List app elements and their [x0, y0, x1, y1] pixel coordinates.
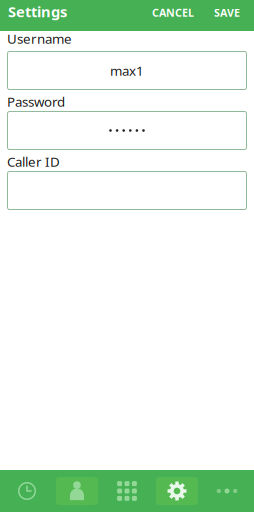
button[interactable]: More: [202, 470, 252, 512]
button[interactable]: Contacts: [52, 470, 102, 512]
staticText: SAVE: [214, 5, 240, 20]
staticText: Settings: [8, 2, 67, 21]
button[interactable]: Settings: [152, 470, 202, 512]
staticText: CANCEL: [152, 5, 194, 20]
staticText: Caller ID: [7, 153, 60, 170]
staticText: max1: [110, 62, 144, 79]
button[interactable]: CANCEL: [145, 0, 201, 27]
staticText: Username: [7, 30, 72, 47]
button[interactable]: Recents: [2, 470, 52, 512]
staticText: Password: [7, 93, 65, 110]
button[interactable]: Keypad: [102, 470, 152, 512]
button[interactable]: SAVE: [205, 0, 249, 27]
